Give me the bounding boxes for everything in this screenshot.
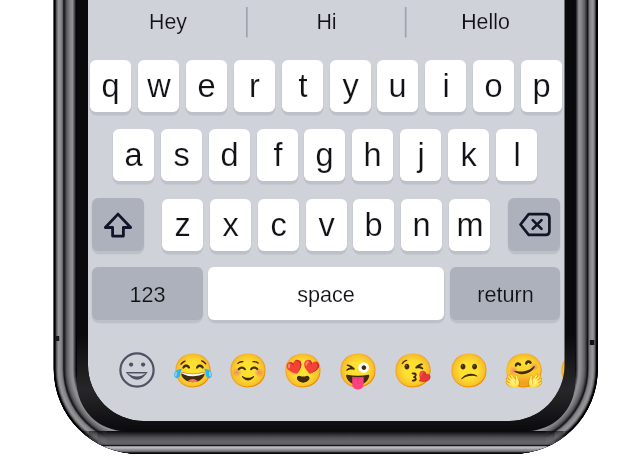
staticText: r xyxy=(249,68,260,104)
staticText: v xyxy=(318,207,335,243)
button[interactable]: f xyxy=(257,129,298,181)
button[interactable]: y xyxy=(330,60,371,112)
button[interactable]: 123 xyxy=(92,267,203,320)
button[interactable]: 😕 xyxy=(445,346,493,394)
button[interactable]: g xyxy=(304,129,345,181)
button[interactable]: o xyxy=(473,60,514,112)
staticText: p xyxy=(532,68,551,104)
staticText: return xyxy=(477,282,534,306)
button[interactable]: 😍 xyxy=(279,346,327,394)
staticText: e xyxy=(197,68,216,104)
staticText: c xyxy=(270,207,287,243)
staticText: o xyxy=(484,68,503,104)
button[interactable]: e xyxy=(186,60,227,112)
button[interactable]: a xyxy=(113,129,154,181)
button[interactable]: ☺️ xyxy=(224,346,272,394)
button[interactable]: Hey xyxy=(88,0,247,45)
staticText: d xyxy=(220,137,239,173)
button[interactable]: u xyxy=(377,60,418,112)
staticText: 😘 xyxy=(392,351,434,390)
staticText: Hey xyxy=(149,10,187,34)
button[interactable]: z xyxy=(162,199,203,251)
button[interactable]: space xyxy=(208,267,444,320)
button[interactable]: j xyxy=(400,129,441,181)
staticText: Hello xyxy=(461,10,510,34)
staticText: z xyxy=(174,207,191,243)
button[interactable]: m xyxy=(449,199,490,251)
button[interactable]: Shift xyxy=(92,198,144,251)
button[interactable]: h xyxy=(352,129,393,181)
button[interactable]: Hi xyxy=(247,0,406,45)
button[interactable]: 😂 xyxy=(169,346,217,394)
button[interactable]: Hello xyxy=(406,0,565,45)
staticText: t xyxy=(298,68,308,104)
staticText: Hi xyxy=(316,10,337,34)
button[interactable]: p xyxy=(521,60,562,112)
staticText: m xyxy=(456,207,484,243)
staticText: ☺️ xyxy=(227,351,269,390)
staticText: y xyxy=(342,68,359,104)
button[interactable]: q xyxy=(90,60,131,112)
button[interactable]: 🤗 xyxy=(500,346,548,394)
button[interactable]: w xyxy=(138,60,179,112)
staticText: h xyxy=(363,137,382,173)
button[interactable]: r xyxy=(234,60,275,112)
staticText: 😂 xyxy=(172,351,214,390)
button[interactable]: x xyxy=(210,199,251,251)
button[interactable]: i xyxy=(425,60,466,112)
button[interactable]: d xyxy=(209,129,250,181)
staticText: s xyxy=(173,137,190,173)
staticText: a xyxy=(124,137,143,173)
staticText: q xyxy=(101,68,120,104)
button[interactable]: 😜 xyxy=(334,346,382,394)
staticText: space xyxy=(297,282,355,306)
staticText: b xyxy=(364,207,383,243)
staticText: 😘 xyxy=(558,351,565,390)
button[interactable]: 😘 xyxy=(555,346,565,394)
staticText: i xyxy=(442,68,450,104)
button[interactable]: n xyxy=(401,199,442,251)
staticText: w xyxy=(147,68,171,104)
button[interactable]: 😘 xyxy=(389,346,437,394)
staticText: k xyxy=(460,137,477,173)
staticText: g xyxy=(315,137,334,173)
button[interactable]: Emoji keyboard xyxy=(116,349,158,391)
staticText: f xyxy=(273,137,283,173)
staticText: x xyxy=(222,207,239,243)
staticText: l xyxy=(513,137,521,173)
button[interactable]: c xyxy=(258,199,299,251)
button[interactable]: return xyxy=(450,267,560,320)
staticText: j xyxy=(417,137,425,173)
staticText: 123 xyxy=(129,282,166,306)
staticText: u xyxy=(388,68,407,104)
button[interactable]: k xyxy=(448,129,489,181)
staticText: 😜 xyxy=(337,351,379,390)
button[interactable]: s xyxy=(161,129,202,181)
staticText: 😕 xyxy=(448,351,490,390)
button[interactable]: t xyxy=(282,60,323,112)
button[interactable]: b xyxy=(353,199,394,251)
button[interactable]: v xyxy=(306,199,347,251)
staticText: 😍 xyxy=(282,351,324,390)
staticText: n xyxy=(412,207,431,243)
staticText: 🤗 xyxy=(503,351,545,390)
button[interactable]: l xyxy=(496,129,537,181)
button[interactable]: Delete xyxy=(508,198,560,251)
